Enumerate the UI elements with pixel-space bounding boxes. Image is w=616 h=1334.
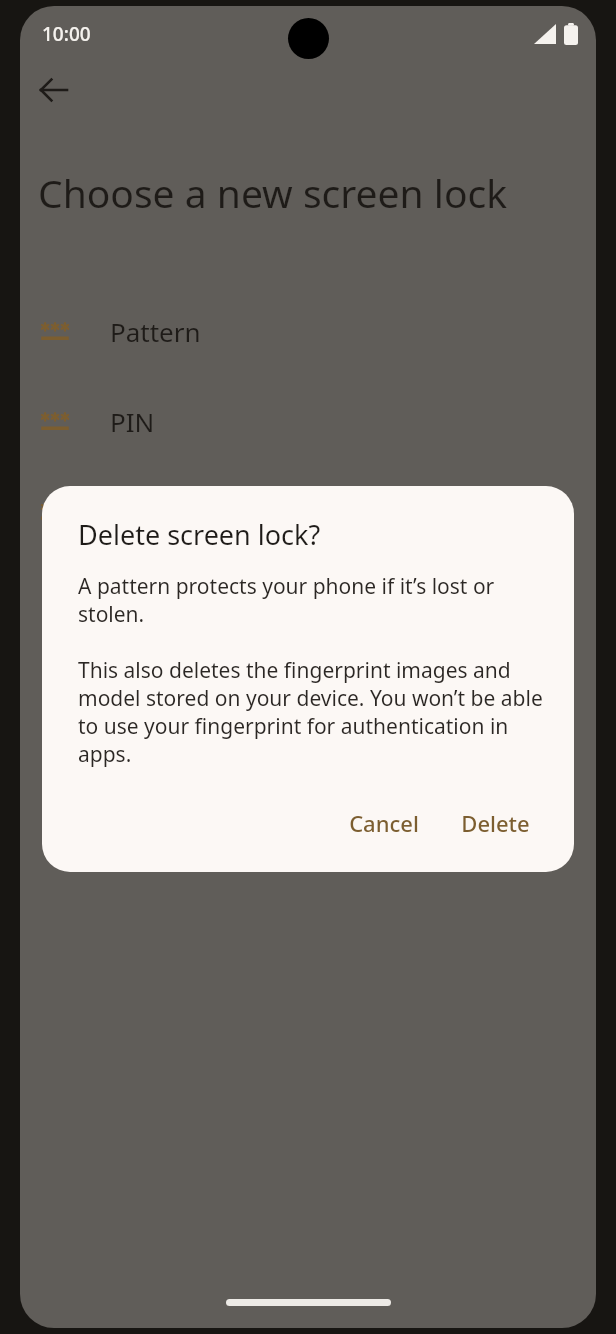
staticText: This also deletes the fingerprint images…	[78, 656, 546, 768]
button[interactable]: PIN	[20, 393, 596, 449]
button[interactable]: Pattern	[20, 303, 596, 359]
staticText: Choose a new screen lock	[38, 166, 570, 219]
staticText: Cancel	[349, 808, 419, 838]
staticText: 10:00	[42, 21, 91, 47]
button[interactable]: Delete	[445, 798, 546, 848]
staticText: PIN	[110, 404, 155, 439]
staticText: A pattern protects your phone if it’s lo…	[78, 572, 546, 628]
button[interactable]: Back	[26, 62, 82, 118]
staticText: Delete screen lock?	[78, 516, 321, 553]
button[interactable]: Cancel	[333, 798, 435, 848]
staticText: Pattern	[110, 314, 201, 349]
staticText: Password	[110, 494, 228, 529]
staticText: Delete	[461, 808, 530, 838]
button[interactable]: Password	[20, 483, 596, 539]
